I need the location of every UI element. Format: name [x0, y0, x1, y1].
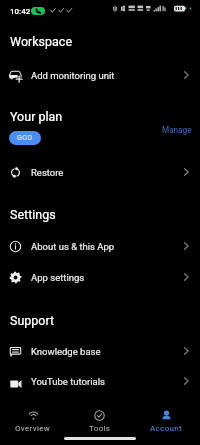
- staticText: Add monitoring unit: [31, 70, 115, 81]
- button[interactable]: About us & this App: [0, 231, 200, 261]
- staticText: Settings: [10, 207, 56, 222]
- staticText: Restore: [31, 167, 64, 178]
- staticText: Knowledge base: [31, 346, 101, 357]
- button[interactable]: YouTube tutorials: [0, 366, 200, 396]
- staticText: Tools: [89, 424, 111, 433]
- button[interactable]: Overview: [0, 400, 66, 445]
- staticText: App settings: [31, 272, 85, 283]
- button[interactable]: GOD: [9, 131, 41, 145]
- button[interactable]: Add monitoring unit: [0, 60, 200, 90]
- button[interactable]: Tools: [66, 400, 133, 445]
- staticText: GOD: [17, 134, 33, 142]
- staticText: Your plan: [10, 109, 63, 124]
- staticText: Manage: [162, 125, 192, 135]
- button[interactable]: Restore: [0, 157, 200, 187]
- staticText: Workspace: [10, 34, 73, 49]
- staticText: Overview: [15, 424, 51, 433]
- staticText: Support: [10, 313, 55, 328]
- button[interactable]: Manage: [160, 123, 194, 137]
- staticText: About us & this App: [31, 241, 115, 252]
- staticText: Account: [150, 424, 183, 433]
- button[interactable]: Account: [133, 400, 200, 445]
- staticText: 10:42: [10, 7, 31, 16]
- button[interactable]: App settings: [0, 262, 200, 292]
- button[interactable]: Knowledge base: [0, 336, 200, 366]
- staticText: YouTube tutorials: [31, 376, 105, 387]
